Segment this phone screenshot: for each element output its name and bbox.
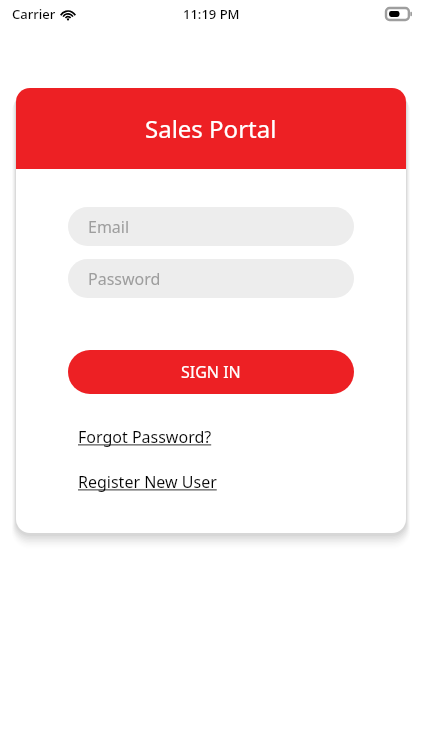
button[interactable]: Register New User bbox=[78, 471, 217, 493]
staticText: Forgot Password? bbox=[78, 426, 212, 448]
button[interactable]: SIGN IN bbox=[68, 350, 354, 394]
staticText: Email bbox=[88, 216, 130, 238]
staticText: Sales Portal bbox=[145, 112, 277, 145]
button[interactable]: Password bbox=[68, 259, 354, 298]
button[interactable]: Forgot Password? bbox=[78, 426, 212, 448]
staticText: SIGN IN bbox=[181, 361, 241, 383]
staticText: Register New User bbox=[78, 471, 217, 493]
button[interactable]: Email bbox=[68, 207, 354, 246]
staticText: Password bbox=[88, 268, 161, 290]
staticText: 11:19 PM bbox=[183, 5, 240, 23]
staticText: Carrier bbox=[12, 5, 56, 23]
